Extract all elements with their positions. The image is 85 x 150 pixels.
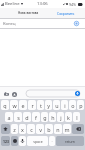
other: Emoji (13, 139, 17, 143)
staticText: 123 (3, 139, 9, 144)
staticText: 13:06 (37, 1, 48, 7)
staticText: Нова вистава (18, 11, 39, 15)
staticText: a (7, 114, 11, 121)
staticText: e (21, 102, 25, 109)
staticText: t (40, 102, 42, 109)
button[interactable]: u (53, 100, 60, 110)
staticText: d (25, 114, 29, 121)
button[interactable]: Emoji (11, 136, 18, 146)
button[interactable]: Apps (10, 90, 18, 98)
staticText: f (35, 114, 37, 121)
staticText: o (71, 102, 75, 109)
staticText: r (31, 102, 34, 109)
button[interactable]: q (1, 100, 9, 110)
staticText: . (51, 138, 53, 144)
staticText: p (79, 102, 83, 109)
staticText: z (13, 126, 16, 133)
staticText: n (56, 126, 60, 133)
button[interactable]: g (41, 112, 48, 122)
button[interactable]: i (61, 100, 68, 110)
button[interactable]: Camera (2, 90, 10, 98)
button[interactable]: a (5, 112, 13, 122)
button[interactable]: w (10, 100, 18, 110)
button[interactable]: o (69, 100, 76, 110)
staticText: k (67, 114, 70, 121)
button[interactable]: 123 (1, 136, 10, 146)
staticText: j (60, 114, 62, 121)
button[interactable]: y (45, 100, 52, 110)
staticText: m (64, 126, 70, 133)
staticText: s (17, 114, 20, 121)
button[interactable]: j (57, 112, 64, 122)
button[interactable]: l (73, 112, 80, 122)
button[interactable]: . (49, 136, 55, 146)
other: Shift (3, 127, 8, 131)
button[interactable]: d (23, 112, 31, 122)
button[interactable]: t (37, 100, 44, 110)
staticText: y (47, 102, 50, 109)
button[interactable]: b (45, 124, 53, 134)
button[interactable]: Send (26, 90, 80, 97)
staticText: return (65, 139, 75, 143)
button[interactable]: Dictation (19, 136, 26, 146)
staticText: v (39, 126, 42, 133)
button[interactable]: v (36, 124, 44, 134)
button[interactable]: z (11, 124, 18, 134)
staticText: b (47, 126, 51, 133)
button[interactable]: Backspace (72, 124, 84, 134)
staticText: x (21, 126, 24, 133)
button[interactable]: c (27, 124, 35, 134)
other: Dictation (21, 139, 24, 143)
button[interactable]: h (49, 112, 56, 122)
staticText: i (64, 102, 66, 109)
button[interactable]: n (54, 124, 62, 134)
button[interactable]: e (19, 100, 27, 110)
button[interactable]: Shift (1, 124, 10, 134)
staticText: Конец (3, 21, 16, 27)
button[interactable]: r (28, 100, 36, 110)
button[interactable]: x (19, 124, 26, 134)
staticText: w (12, 102, 17, 109)
button[interactable]: p (77, 100, 84, 110)
staticText: space (33, 139, 43, 144)
staticText: g (43, 114, 47, 121)
staticText: Сохранить (57, 11, 75, 16)
staticText: Beeline (5, 1, 20, 7)
button[interactable]: s (14, 112, 22, 122)
button[interactable]: Add participant (73, 20, 80, 27)
staticText: h (51, 114, 55, 121)
staticText: c (30, 126, 33, 133)
button[interactable]: Сохранить (57, 11, 75, 16)
button[interactable]: return (56, 136, 84, 146)
button[interactable]: Send (75, 91, 80, 96)
button[interactable]: m (63, 124, 71, 134)
other: Backspace (76, 127, 81, 131)
button[interactable]: k (65, 112, 72, 122)
staticText: u (55, 102, 59, 109)
button[interactable]: space (27, 136, 48, 146)
button[interactable]: f (32, 112, 40, 122)
staticText: q (3, 102, 7, 109)
staticText: 94% (69, 2, 77, 7)
button[interactable]: Нова вистава (18, 11, 39, 15)
staticText: l (76, 114, 78, 121)
